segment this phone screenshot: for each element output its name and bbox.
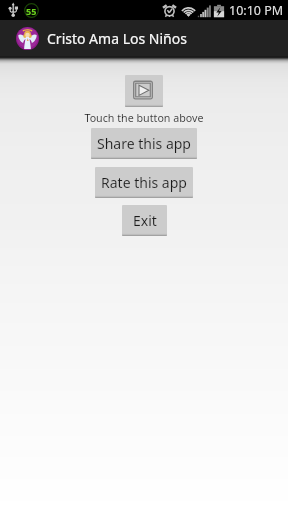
button[interactable]: Rate this app [95,167,193,198]
button[interactable]: Play [125,75,163,107]
staticText: 10:10 PM [229,2,284,19]
button[interactable]: Share this app [91,128,197,159]
staticText: Rate this app [101,173,187,192]
button[interactable]: Exit [122,205,167,236]
staticText: Touch the button above [84,111,204,126]
staticText: Cristo Ama Los Niños [47,29,187,48]
staticText: Share this app [97,134,191,153]
staticText: Exit [133,211,157,230]
staticText: 55 [26,5,37,17]
